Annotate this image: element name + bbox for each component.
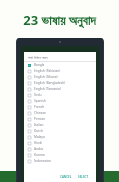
- staticText: English (Bangladesh): [34, 81, 66, 85]
- button[interactable]: Indonesian: [24, 158, 96, 164]
- button[interactable]: Bangla: [24, 62, 96, 68]
- staticText: Chinese: [34, 111, 46, 115]
- button[interactable]: Dutch: [24, 128, 96, 134]
- button[interactable]: English (Bangladesh): [24, 80, 96, 86]
- staticText: Spanish: [34, 99, 46, 103]
- staticText: English (Pakistan): [34, 69, 61, 73]
- button[interactable]: CANCEL: [57, 174, 75, 180]
- button[interactable]: Korean: [24, 152, 96, 158]
- staticText: Urdu: [34, 93, 42, 97]
- button[interactable]: Arabic: [24, 146, 96, 152]
- staticText: 23 ভাষায় অনুবাদ: [23, 11, 96, 29]
- button[interactable]: Urdu: [24, 92, 96, 98]
- staticText: Bangla: [34, 63, 45, 67]
- button[interactable]: Italian: [24, 122, 96, 128]
- button[interactable]: French: [24, 104, 96, 110]
- button[interactable]: English (Tanzania): [24, 86, 96, 92]
- button[interactable]: Malaya: [24, 134, 96, 140]
- staticText: ভাষা নির্বাচন করুন: [28, 55, 48, 60]
- staticText: Malaya: [34, 135, 45, 139]
- staticText: English (Tanzania): [34, 87, 61, 91]
- button[interactable]: English (Pakistan): [24, 68, 96, 74]
- staticText: French: [34, 105, 45, 109]
- button[interactable]: Hindi: [24, 140, 96, 146]
- staticText: Hindi: [34, 141, 42, 145]
- staticText: SELECT: [78, 175, 89, 179]
- button[interactable]: Persian: [24, 116, 96, 122]
- staticText: Korean: [34, 153, 45, 157]
- staticText: Indonesian: [34, 159, 51, 163]
- button[interactable]: Chinese: [24, 110, 96, 116]
- staticText: Dutch: [34, 129, 43, 133]
- staticText: CANCEL: [60, 175, 72, 179]
- staticText: English (Ghana): [34, 75, 58, 79]
- staticText: Arabic: [34, 147, 44, 151]
- staticText: Persian: [34, 117, 46, 121]
- button[interactable]: SELECT: [75, 174, 92, 180]
- staticText: Italian: [34, 123, 44, 127]
- button[interactable]: Spanish: [24, 98, 96, 104]
- button[interactable]: English (Ghana): [24, 74, 96, 80]
